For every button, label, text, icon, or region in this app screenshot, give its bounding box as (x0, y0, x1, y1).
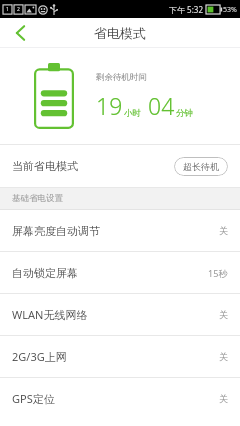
staticText: 屏幕亮度自动调节 (12, 224, 100, 238)
staticText: 自动锁定屏幕 (12, 266, 78, 280)
button[interactable]: 屏幕亮度自动调节 (0, 210, 240, 251)
staticText: 53% (223, 5, 237, 15)
button[interactable]: 2G/3G上网 (0, 336, 240, 377)
staticText: 关 (219, 225, 228, 236)
staticText: 超长待机 (183, 161, 219, 172)
button[interactable]: 超长待机 (174, 157, 228, 176)
button[interactable]: WLAN无线网络 (0, 294, 240, 335)
staticText: 04 (148, 90, 175, 121)
staticText: 小时 (124, 108, 141, 119)
staticText: 15秒 (208, 267, 228, 279)
staticText: 剩余待机时间 (96, 72, 147, 83)
button[interactable]: 自动锁定屏幕 (0, 252, 240, 293)
staticText: WLAN无线网络 (12, 307, 88, 322)
staticText: 当前省电模式 (12, 159, 78, 173)
staticText: 19 (96, 90, 123, 121)
button[interactable]: 返回 (0, 18, 40, 47)
staticText: 省电模式 (94, 25, 146, 41)
staticText: GPS定位 (12, 391, 55, 406)
staticText: 关 (219, 309, 228, 320)
staticText: 基础省电设置 (12, 193, 63, 204)
staticText: 2 (17, 6, 20, 13)
staticText: 1 (6, 6, 9, 13)
button[interactable]: 当前省电模式 (0, 145, 240, 187)
staticText: 2G/3G上网 (12, 349, 67, 364)
staticText: 分钟 (176, 108, 193, 119)
staticText: 关 (219, 393, 228, 404)
button[interactable]: GPS定位 (0, 378, 240, 419)
staticText: 下午 5:32 (169, 4, 203, 15)
staticText: 关 (219, 351, 228, 362)
